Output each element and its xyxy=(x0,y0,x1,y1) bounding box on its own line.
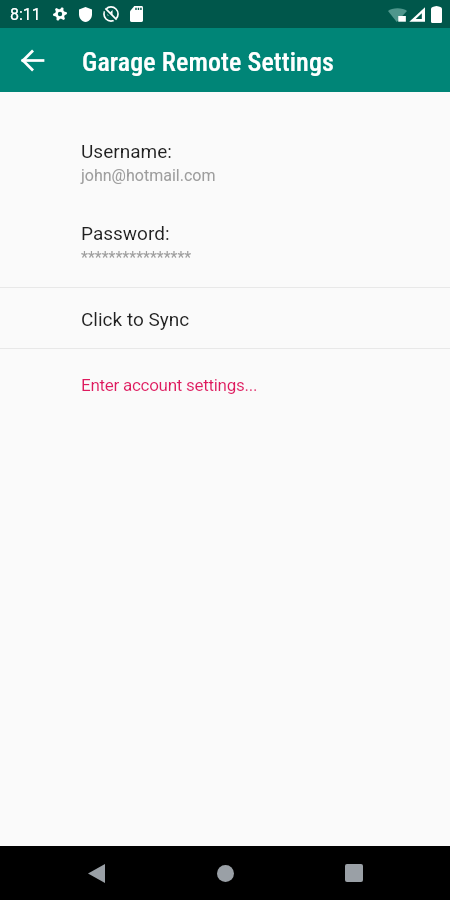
button[interactable]: Recent apps xyxy=(327,846,381,900)
button[interactable]: Navigate up xyxy=(12,40,52,80)
staticText: john@hotmail.com xyxy=(81,166,216,185)
staticText: 8:11 xyxy=(10,5,41,24)
button[interactable]: Click to Sync xyxy=(0,288,450,349)
staticText: Enter account settings... xyxy=(81,375,258,395)
staticText: Password: xyxy=(81,222,170,244)
staticText: Click to Sync xyxy=(81,308,190,330)
staticText: Garage Remote Settings xyxy=(82,47,334,77)
button[interactable]: Home xyxy=(198,846,252,900)
staticText: **************** xyxy=(81,248,192,267)
button[interactable]: Username: xyxy=(0,136,450,189)
button[interactable]: Back xyxy=(69,846,123,900)
staticText: Username: xyxy=(81,140,172,162)
button[interactable]: Enter account settings... xyxy=(0,349,450,421)
button[interactable]: Password: xyxy=(0,218,450,271)
